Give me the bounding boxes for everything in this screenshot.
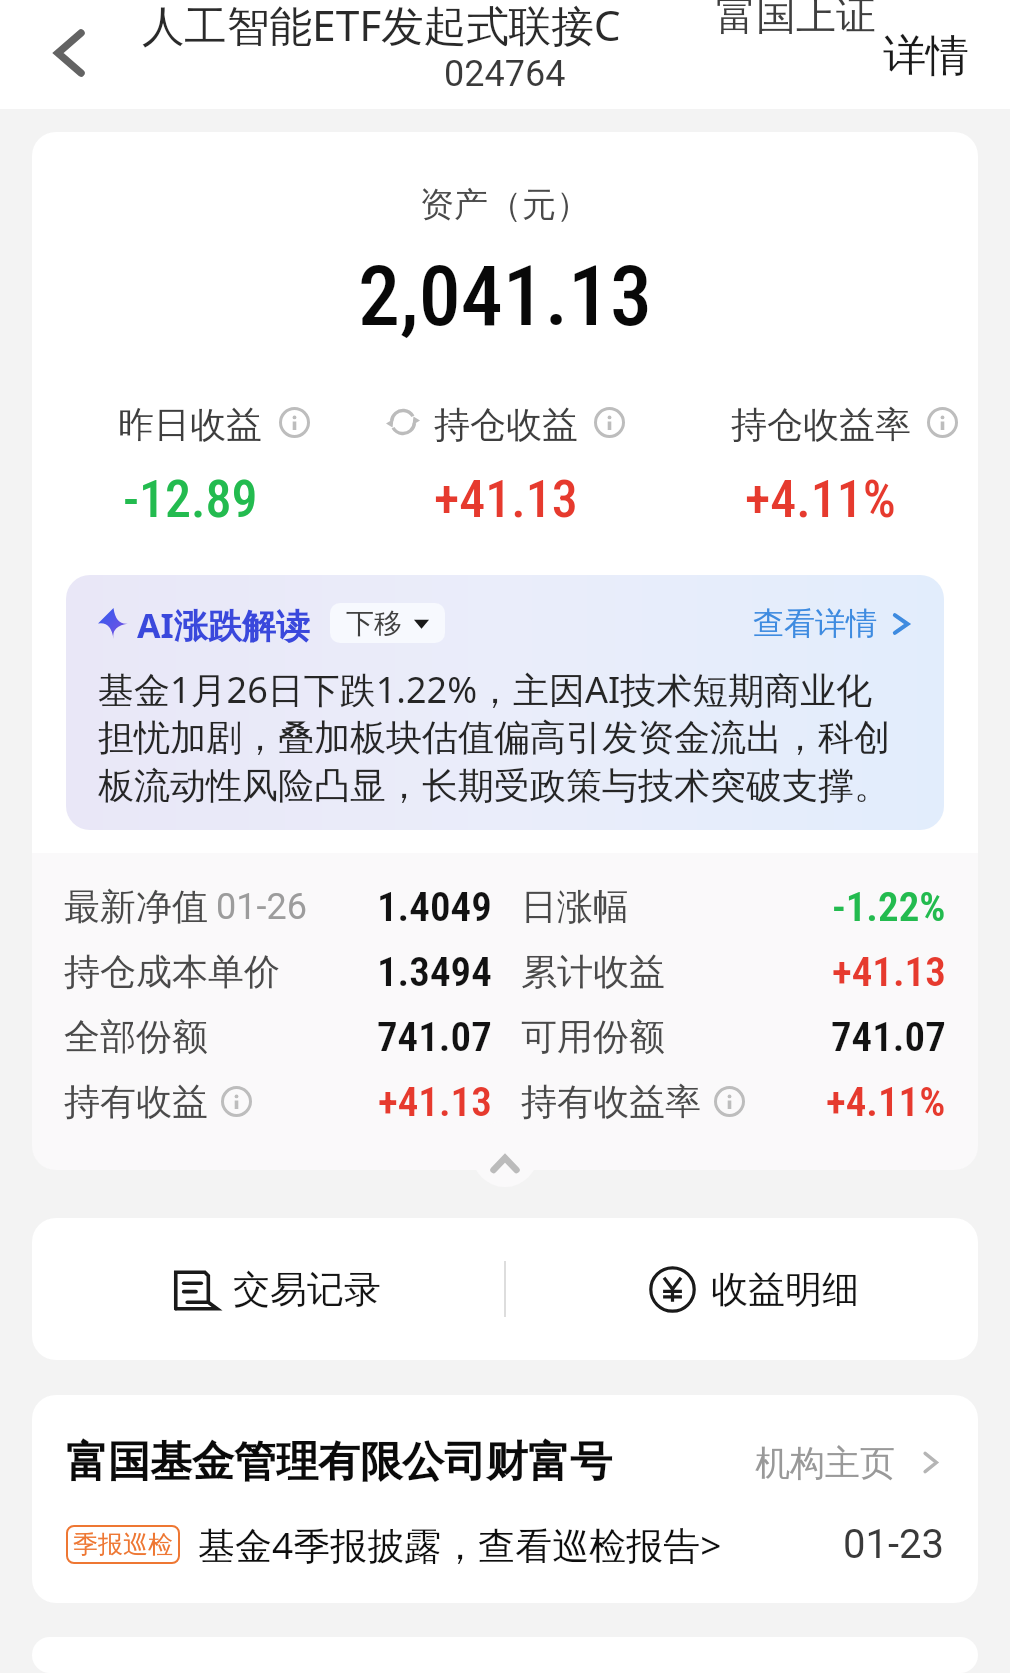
staticText: +41.13: [832, 948, 946, 996]
staticText: +4.11%: [826, 1078, 946, 1126]
staticText: -1.22%: [832, 883, 946, 931]
staticText: +41.13: [378, 1078, 492, 1126]
staticText: 024764: [444, 53, 566, 95]
button[interactable]: 昨日收益: [32, 402, 348, 530]
staticText: 收益明细: [711, 1266, 859, 1313]
staticText: 人工智能ETF发起式联接C: [142, 0, 621, 54]
staticText: 最新净值: [64, 884, 208, 929]
staticText: 机构主页: [755, 1441, 895, 1485]
button[interactable]: 收益明细: [506, 1218, 978, 1360]
button[interactable]: 查看详情: [753, 604, 912, 643]
staticText: 富国上证: [716, 0, 876, 40]
button[interactable]: Collapse details: [465, 1163, 545, 1203]
staticText: 全部份额: [64, 1014, 208, 1059]
button[interactable]: AI涨跌解读: [66, 575, 944, 830]
staticText: 担忧加剧，叠加板块估值偏高引发资金流出，科创: [98, 715, 890, 760]
staticText: 累计收益: [521, 949, 665, 994]
button[interactable]: 详情: [883, 29, 969, 83]
staticText: +4.11%: [745, 469, 896, 530]
staticText: 富国基金管理有限公司财富号: [66, 1436, 612, 1489]
staticText: 季报巡检: [73, 1529, 173, 1560]
staticText: AI涨跌解读: [137, 602, 310, 644]
staticText: 741.07: [831, 1013, 946, 1061]
staticText: 可用份额: [521, 1014, 665, 1059]
staticText: 昨日收益: [118, 402, 262, 442]
staticText: 741.07: [377, 1013, 492, 1061]
button[interactable]: 下移: [330, 603, 445, 643]
button[interactable]: Back: [40, 22, 100, 84]
staticText: 查看详情: [753, 604, 877, 643]
staticText: 持仓收益: [434, 402, 578, 442]
staticText: 持仓收益率: [731, 402, 911, 442]
staticText: 资产（元）: [32, 183, 978, 226]
staticText: -12.89: [123, 469, 258, 530]
staticText: 交易记录: [233, 1266, 381, 1313]
staticText: 1.4049: [377, 883, 492, 931]
staticText: +41.13: [434, 469, 578, 530]
staticText: 1.3494: [377, 948, 492, 996]
button[interactable]: 季报巡检: [66, 1515, 944, 1573]
button[interactable]: 持仓收益率: [663, 402, 978, 530]
staticText: 下移: [346, 606, 402, 641]
staticText: 持仓成本单价: [64, 949, 280, 994]
staticText: 持有收益率: [521, 1079, 701, 1124]
staticText: 日涨幅: [521, 884, 629, 929]
button[interactable]: 持仓收益: [348, 402, 663, 530]
staticText: 持有收益: [64, 1079, 208, 1124]
staticText: 基金4季报披露，查看巡检报告>: [198, 1519, 722, 1570]
staticText: 01-26: [216, 886, 307, 928]
button[interactable]: 交易记录: [32, 1218, 504, 1360]
button[interactable]: 富国基金管理有限公司财富号: [66, 1436, 944, 1489]
staticText: 板流动性风险凸显，长期受政策与技术突破支撑。: [98, 763, 890, 808]
staticText: 2,041.13: [32, 247, 978, 345]
staticText: 01-23: [843, 1521, 944, 1568]
staticText: 基金1月26日下跌1.22%，主因AI技术短期商业化: [98, 665, 873, 713]
